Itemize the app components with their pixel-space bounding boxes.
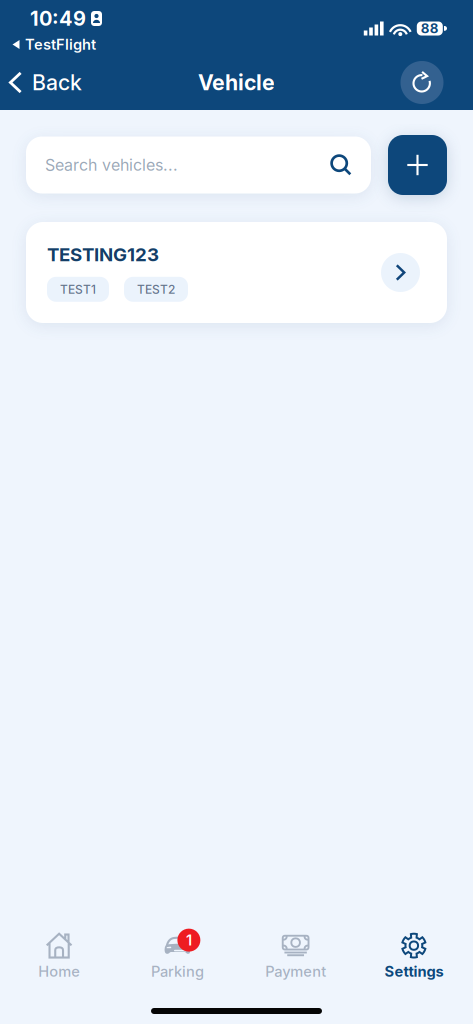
staticText: TEST2 (137, 282, 175, 296)
button[interactable]: Settings (355, 926, 473, 983)
staticText: 88 (421, 20, 439, 36)
staticText: Vehicle (198, 70, 275, 95)
button[interactable]: Home (0, 926, 118, 983)
staticText: TESTING123 (47, 243, 159, 266)
staticText: 10:49 (30, 6, 86, 31)
staticText: TestFlight (25, 36, 96, 53)
staticText: 1 (186, 931, 192, 949)
button[interactable]: Refresh (397, 57, 447, 107)
staticText: Parking (151, 963, 204, 980)
staticText: Back (32, 70, 82, 95)
button[interactable]: Payment (236, 926, 355, 983)
button[interactable]: TESTING123 (26, 222, 447, 323)
button[interactable]: Search vehicles... (26, 136, 371, 193)
button[interactable]: Add vehicle (388, 135, 447, 195)
staticText: TEST1 (60, 282, 96, 296)
staticText: Settings (384, 963, 443, 980)
button[interactable]: 1 (118, 926, 236, 983)
staticText: Search vehicles... (45, 155, 178, 175)
staticText: Home (38, 963, 80, 980)
button[interactable]: Back (0, 61, 94, 104)
staticText: Payment (265, 963, 326, 980)
